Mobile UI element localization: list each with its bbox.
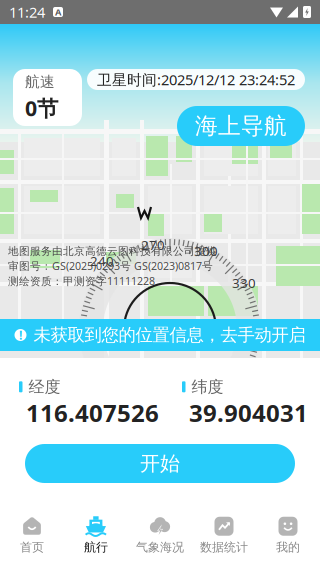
staticText: 数据统计 (200, 540, 248, 554)
staticText: 气象海况 (136, 540, 184, 554)
staticText: 我的 (276, 540, 300, 554)
staticText: 经度 (28, 377, 60, 397)
staticText: 测绘资质：甲测资字11111228 (8, 274, 155, 288)
staticText: 330 (232, 274, 256, 292)
staticText: 116.407526 (26, 397, 159, 429)
staticText: 纬度 (191, 377, 223, 397)
staticText: 未获取到您的位置信息，去手动开启 (33, 324, 305, 346)
staticText: 航速 (25, 73, 55, 91)
staticText: 11:24 (9, 2, 45, 22)
staticText: 首页 (20, 540, 44, 554)
button[interactable]: ! (0, 319, 320, 351)
button[interactable]: 首页 (0, 516, 64, 570)
staticText: 240 (90, 252, 114, 270)
button[interactable]: 海上导航 (177, 106, 305, 146)
staticText: 海上导航 (195, 112, 287, 140)
button[interactable]: 开始 (25, 444, 295, 483)
staticText: 卫星时间:2025/12/12 23:24:52 (97, 70, 295, 89)
button[interactable]: 我的 (256, 516, 320, 570)
staticText: ! (19, 327, 22, 343)
staticText: 300 (194, 242, 218, 260)
button[interactable]: 航行 (64, 516, 128, 570)
staticText: A (55, 6, 61, 18)
staticText: 航行 (84, 540, 108, 554)
button[interactable]: 气象海况 (128, 516, 192, 570)
staticText: 270 (141, 236, 165, 254)
staticText: 审图号：GS(2025)0293号 GS(2023)0817号 (8, 259, 213, 273)
staticText: 开始 (140, 451, 180, 476)
staticText: 39.904031 (189, 397, 308, 429)
staticText: 0节 (25, 94, 58, 122)
staticText: 地图服务由北京高德云图科技有限公司提供 (8, 245, 217, 258)
button[interactable]: 数据统计 (192, 516, 256, 570)
